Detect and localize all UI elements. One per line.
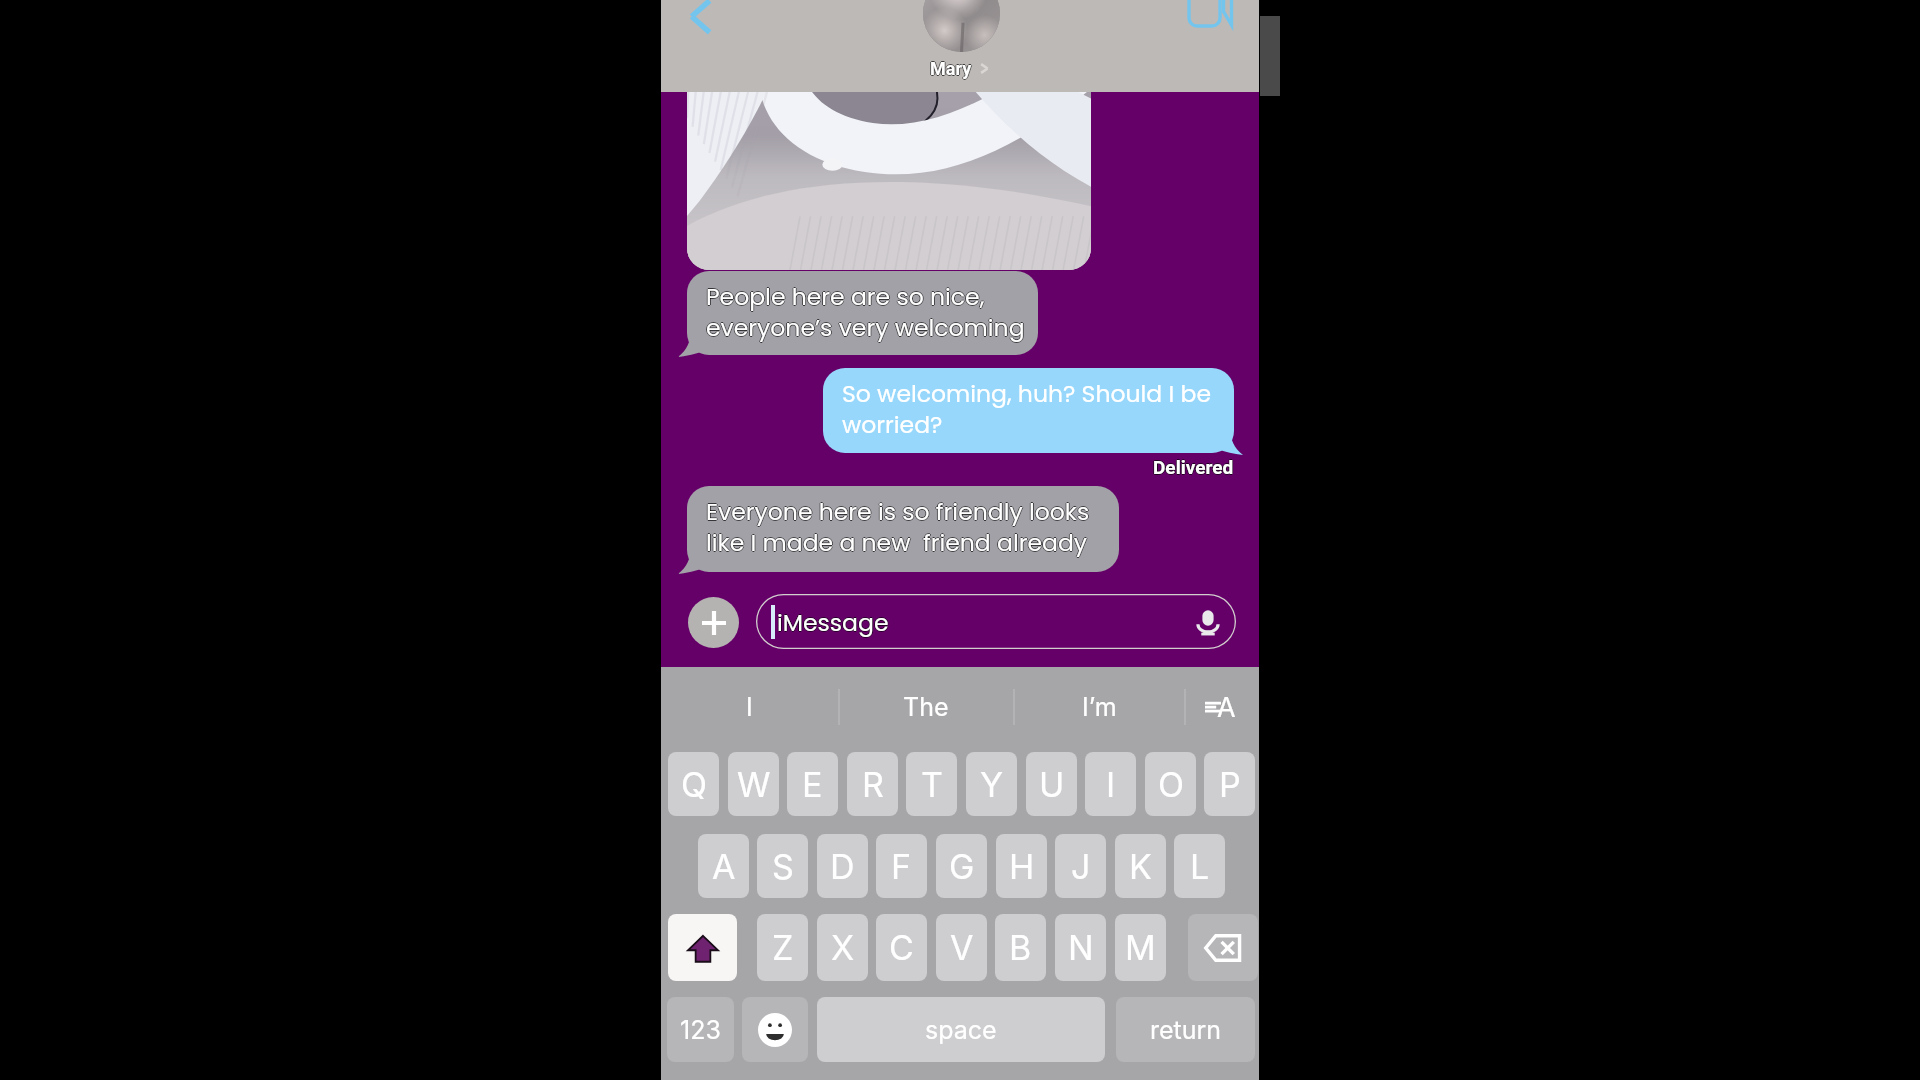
button[interactable]: Shift <box>668 914 737 981</box>
staticText: U <box>1039 764 1065 805</box>
staticText: iMessage <box>777 606 889 639</box>
button[interactable]: U <box>1026 752 1077 816</box>
staticText: J <box>1071 846 1091 887</box>
button[interactable]: Contact photo <box>923 0 1000 52</box>
button[interactable]: F <box>876 834 927 898</box>
staticText: iMessage <box>777 605 889 638</box>
staticText: Everyone here is so friendly looks like … <box>707 495 1091 559</box>
button[interactable]: Text formatting <box>1185 667 1259 747</box>
staticText: 123 <box>680 1015 721 1045</box>
staticText: I <box>1106 764 1116 805</box>
staticText: iMessage <box>776 606 888 639</box>
staticText: L <box>1190 846 1210 887</box>
button[interactable]: 123 <box>667 997 734 1062</box>
staticText: Z <box>772 927 794 968</box>
staticText: K <box>1129 846 1152 887</box>
staticText: V <box>950 927 974 968</box>
button[interactable]: Back <box>683 0 719 42</box>
staticText: Mary <box>929 58 971 79</box>
staticText: Everyone here is so friendly looks like … <box>706 495 1090 559</box>
staticText: I’m <box>1082 692 1117 722</box>
staticText: N <box>1068 927 1094 968</box>
button[interactable]: Emoji keyboard <box>742 997 808 1062</box>
button[interactable]: B <box>995 914 1046 981</box>
button[interactable]: A <box>698 834 749 898</box>
staticText: People here are so nice, everyone’s very… <box>707 280 1026 344</box>
staticText: E <box>802 764 823 805</box>
staticText: iMessage <box>777 607 889 640</box>
button[interactable]: O <box>1145 752 1196 816</box>
staticText: O <box>1158 764 1184 805</box>
staticText: Mary <box>931 58 973 79</box>
staticText: Mary <box>930 57 972 78</box>
button[interactable]: Everyone here is so friendly looks like … <box>687 486 1119 572</box>
button[interactable]: D <box>817 834 868 898</box>
button[interactable]: So welcoming, huh? Should I be worried? <box>823 368 1234 453</box>
staticText: Delivered <box>1154 456 1235 478</box>
button[interactable]: Dictate <box>1188 602 1228 642</box>
staticText: Everyone here is so friendly looks like … <box>706 494 1090 558</box>
button[interactable]: X <box>817 914 868 981</box>
button[interactable]: I’m <box>1014 667 1184 747</box>
staticText: Everyone here is so friendly looks like … <box>706 496 1090 560</box>
button[interactable]: M <box>1115 914 1166 981</box>
button[interactable]: V <box>936 914 987 981</box>
staticText: Delivered <box>1153 455 1234 477</box>
staticText: D <box>830 846 855 887</box>
staticText: X <box>831 927 855 968</box>
button[interactable]: I <box>1085 752 1136 816</box>
staticText: A <box>1217 691 1236 724</box>
button[interactable]: W <box>728 752 779 816</box>
staticText: T <box>921 764 943 805</box>
button[interactable]: Add attachment <box>688 597 739 648</box>
button[interactable] <box>687 25 1091 270</box>
button[interactable]: N <box>1055 914 1106 981</box>
button[interactable]: L <box>1174 834 1225 898</box>
staticText: A <box>712 846 736 887</box>
staticText: Mary <box>930 58 972 79</box>
staticText: iMessage <box>778 606 890 639</box>
button[interactable]: E <box>787 752 838 816</box>
button[interactable]: I <box>661 667 838 747</box>
button[interactable]: P <box>1204 752 1255 816</box>
button[interactable]: space <box>817 997 1105 1062</box>
button[interactable]: Mary <box>930 58 991 79</box>
staticText: M <box>1125 927 1156 968</box>
button[interactable]: G <box>936 834 987 898</box>
button[interactable]: Z <box>757 914 808 981</box>
button[interactable]: return <box>1116 997 1255 1062</box>
staticText: G <box>949 846 975 887</box>
button[interactable]: The <box>839 667 1013 747</box>
staticText: Everyone here is so friendly looks like … <box>705 495 1089 559</box>
staticText: People here are so nice, everyone’s very… <box>705 280 1024 344</box>
button[interactable]: FaceTime video call <box>1189 0 1233 26</box>
staticText: Delivered <box>1153 456 1234 478</box>
button[interactable]: iMessage <box>756 594 1236 649</box>
staticText: R <box>862 764 884 805</box>
staticText: Delivered <box>1153 457 1234 479</box>
button[interactable]: T <box>906 752 957 816</box>
staticText: Y <box>980 764 1004 805</box>
button[interactable]: C <box>876 914 927 981</box>
staticText: C <box>889 927 914 968</box>
button[interactable]: K <box>1115 834 1166 898</box>
staticText: P <box>1219 764 1241 805</box>
staticText: Q <box>681 764 707 805</box>
staticText: Mary <box>930 59 972 80</box>
button[interactable]: S <box>757 834 808 898</box>
button[interactable]: J <box>1055 834 1106 898</box>
button[interactable]: Q <box>668 752 719 816</box>
staticText: I <box>746 692 753 722</box>
staticText: H <box>1009 846 1035 887</box>
button[interactable]: People here are so nice, everyone’s very… <box>687 271 1038 355</box>
staticText: space <box>925 1015 997 1045</box>
staticText: B <box>1009 927 1032 968</box>
button[interactable]: H <box>996 834 1047 898</box>
staticText: People here are so nice, everyone’s very… <box>706 279 1025 343</box>
staticText: The <box>903 692 949 722</box>
staticText: F <box>891 846 912 887</box>
button[interactable]: Backspace <box>1188 914 1258 981</box>
button[interactable]: R <box>847 752 898 816</box>
button[interactable]: Y <box>966 752 1017 816</box>
staticText: People here are so nice, everyone’s very… <box>706 281 1025 345</box>
